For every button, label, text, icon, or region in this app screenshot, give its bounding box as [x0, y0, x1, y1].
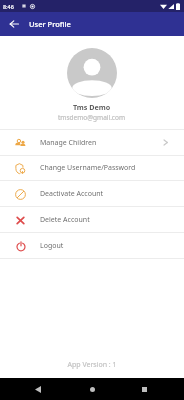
button[interactable]: Delete Account — [0, 207, 184, 232]
staticText: tmsdemo@gmail.com — [58, 113, 126, 122]
button[interactable]: Home — [82, 379, 102, 399]
button[interactable]: Back — [28, 379, 48, 399]
staticText: Tms Demo — [73, 102, 111, 112]
staticText: Manage Children — [40, 138, 97, 148]
staticText: App Version : 1 — [0, 360, 184, 370]
staticText: Change Username/Password — [40, 163, 136, 173]
button[interactable]: Logout — [0, 233, 184, 258]
staticText: Logout — [40, 241, 64, 251]
button[interactable]: Back — [6, 16, 22, 32]
staticText: 8:46 — [3, 3, 14, 10]
staticText: Deactivate Account — [40, 189, 104, 199]
staticText: Delete Account — [40, 215, 90, 225]
button[interactable]: Recents — [134, 379, 154, 399]
button[interactable]: Deactivate Account — [0, 181, 184, 206]
button[interactable]: Manage Children — [0, 130, 184, 155]
button[interactable]: Change Username/Password — [0, 156, 184, 180]
staticText: User Profile — [29, 19, 71, 29]
